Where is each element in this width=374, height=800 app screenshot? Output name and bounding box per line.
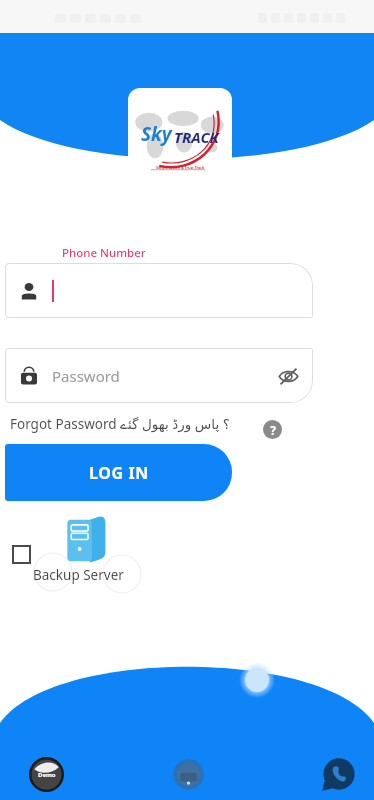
button[interactable]: Forgot Password ؟ پاس ورڈ بھول گئے <box>10 412 230 436</box>
button[interactable]: Show password <box>275 363 301 389</box>
button[interactable]: Info <box>172 758 205 791</box>
staticText: LOG IN <box>89 462 149 484</box>
staticText: ? <box>270 422 276 438</box>
button[interactable]: SkyTrack logo <box>128 88 232 183</box>
button[interactable]: Backup Server <box>33 566 124 584</box>
button[interactable]: Password <box>5 348 313 403</box>
staticText: Forgot Password ؟ پاس ورڈ بھول گئے <box>10 415 230 433</box>
button[interactable] <box>5 263 313 318</box>
staticText: Sky <box>141 121 172 147</box>
staticText: Simple Secure & Trust Track <box>156 165 205 170</box>
button[interactable]: Backup Server checkbox <box>10 543 32 565</box>
staticText: Demo <box>38 771 56 779</box>
button[interactable]: LOG IN <box>5 444 232 501</box>
button[interactable]: WhatsApp <box>322 757 356 791</box>
staticText: TRACK <box>174 127 219 147</box>
button[interactable]: Demo <box>29 757 64 792</box>
staticText: Phone Number <box>62 245 146 261</box>
staticText: Password <box>52 366 275 386</box>
button[interactable]: Help <box>263 420 282 439</box>
button[interactable]: Backup server <box>55 512 111 568</box>
